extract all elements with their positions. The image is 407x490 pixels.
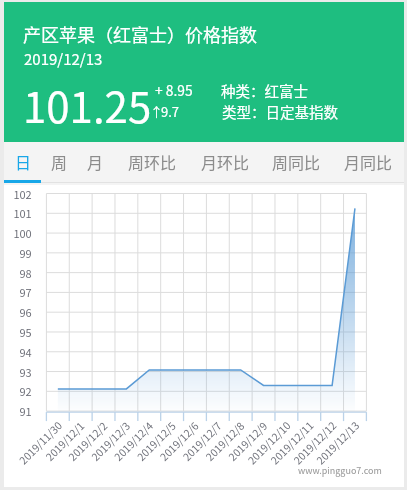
button[interactable]: 月环比 — [197, 142, 253, 181]
button[interactable]: 周同比 — [268, 142, 324, 181]
staticText: ↑ — [150, 102, 164, 121]
staticText: 周同比 — [272, 150, 321, 173]
staticText: 月 — [87, 150, 104, 173]
staticText: 周环比 — [128, 150, 177, 173]
staticText: 101.25 — [23, 74, 152, 135]
staticText: 种类：红富士 — [221, 80, 308, 101]
button[interactable]: 周 — [47, 142, 71, 181]
staticText: 9.7 — [161, 102, 180, 121]
staticText: 月环比 — [201, 150, 250, 173]
staticText: 类型：日定基指数 — [222, 101, 338, 122]
staticText: 月同比 — [344, 150, 393, 173]
staticText: 日 — [15, 150, 32, 173]
button[interactable]: 周环比 — [124, 142, 180, 181]
button[interactable]: 月 — [83, 142, 107, 181]
staticText: + 8.95 — [155, 80, 193, 100]
staticText: 周 — [51, 150, 68, 173]
button[interactable]: 月同比 — [340, 142, 396, 181]
staticText: 2019/12/13 — [24, 48, 103, 70]
staticText: 产区苹果（红富士）价格指数 — [23, 21, 257, 47]
button[interactable]: 日 — [11, 142, 35, 181]
